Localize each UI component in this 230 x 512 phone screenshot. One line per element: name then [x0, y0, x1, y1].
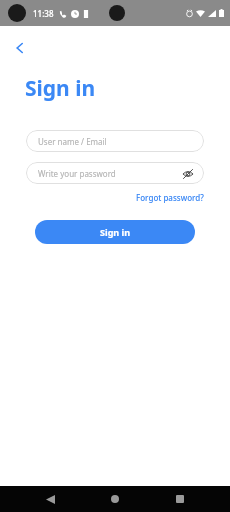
staticText: 11:38	[33, 8, 54, 19]
button[interactable]: Back	[4, 32, 36, 64]
button[interactable]: Home	[100, 486, 130, 512]
staticText: Forgot password?	[136, 192, 204, 203]
button[interactable]: Sign in	[35, 220, 195, 244]
button[interactable]: Recent apps	[165, 486, 195, 512]
button[interactable]: Show password	[181, 167, 194, 180]
staticText: User name / Email	[38, 136, 194, 147]
button[interactable]: User name / Email	[26, 130, 204, 152]
button[interactable]: Forgot password?	[136, 192, 204, 203]
staticText: Sign in	[25, 74, 96, 103]
button[interactable]: Back	[35, 486, 65, 512]
staticText: Write your password	[38, 168, 181, 179]
staticText: Sign in	[100, 226, 131, 238]
button[interactable]: Write your password	[26, 162, 204, 184]
